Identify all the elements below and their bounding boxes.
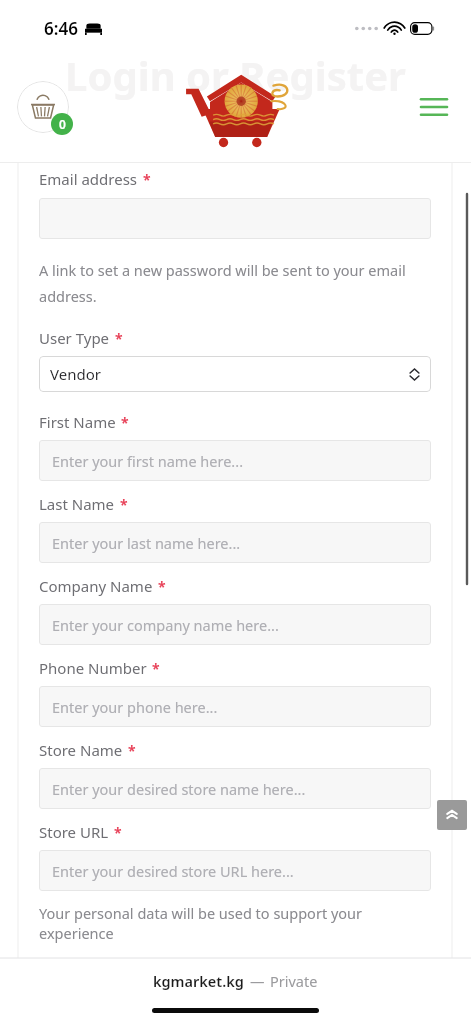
- staticText: Enter your first name here...: [52, 451, 244, 471]
- button[interactable]: Enter your company name here...: [39, 604, 431, 645]
- staticText: Enter your last name here...: [52, 533, 241, 553]
- button[interactable]: kgmarket.kg: [153, 971, 318, 991]
- staticText: *: [143, 170, 151, 189]
- button[interactable]: Enter your desired store URL here...: [39, 850, 431, 891]
- staticText: A link to set a new password will be sen…: [39, 260, 406, 306]
- staticText: Private: [270, 971, 318, 991]
- button[interactable]: Scroll to top: [437, 800, 467, 830]
- staticText: 0: [59, 116, 66, 132]
- button[interactable]: Enter your first name here...: [39, 440, 431, 481]
- staticText: Enter your desired store URL here...: [52, 861, 294, 881]
- staticText: Email address: [39, 169, 138, 189]
- staticText: Enter your company name here...: [52, 615, 279, 635]
- button[interactable]: Cart, 0 items: [12, 76, 74, 138]
- staticText: *: [128, 741, 136, 760]
- staticText: *: [114, 823, 122, 842]
- button[interactable]: Menu: [411, 84, 457, 130]
- staticText: Last Name: [39, 494, 115, 514]
- button[interactable]: Enter your last name here...: [39, 522, 431, 563]
- staticText: Your personal data will be used to suppo…: [39, 903, 431, 943]
- staticText: Company Name: [39, 576, 153, 596]
- button[interactable]: kgmarket.kg home: [180, 67, 292, 151]
- button[interactable]: [39, 198, 431, 239]
- staticText: 6:46: [44, 17, 78, 40]
- staticText: kgmarket.kg: [153, 971, 244, 991]
- staticText: Store Name: [39, 740, 123, 760]
- staticText: Phone Number: [39, 658, 147, 678]
- staticText: —: [250, 971, 265, 991]
- staticText: *: [115, 329, 123, 348]
- button[interactable]: Enter your phone here...: [39, 686, 431, 727]
- staticText: User Type: [39, 328, 110, 348]
- staticText: Login or Register: [0, 48, 471, 102]
- staticText: Enter your phone here...: [52, 697, 218, 717]
- staticText: *: [152, 659, 160, 678]
- staticText: Store URL: [39, 822, 109, 842]
- button[interactable]: Enter your desired store name here...: [39, 768, 431, 809]
- staticText: Enter your desired store name here...: [52, 779, 306, 799]
- staticText: First Name: [39, 412, 116, 432]
- staticText: *: [120, 495, 128, 514]
- staticText: Vendor: [50, 364, 101, 384]
- staticText: *: [158, 577, 166, 596]
- staticText: *: [121, 413, 129, 432]
- button[interactable]: Vendor: [39, 356, 431, 392]
